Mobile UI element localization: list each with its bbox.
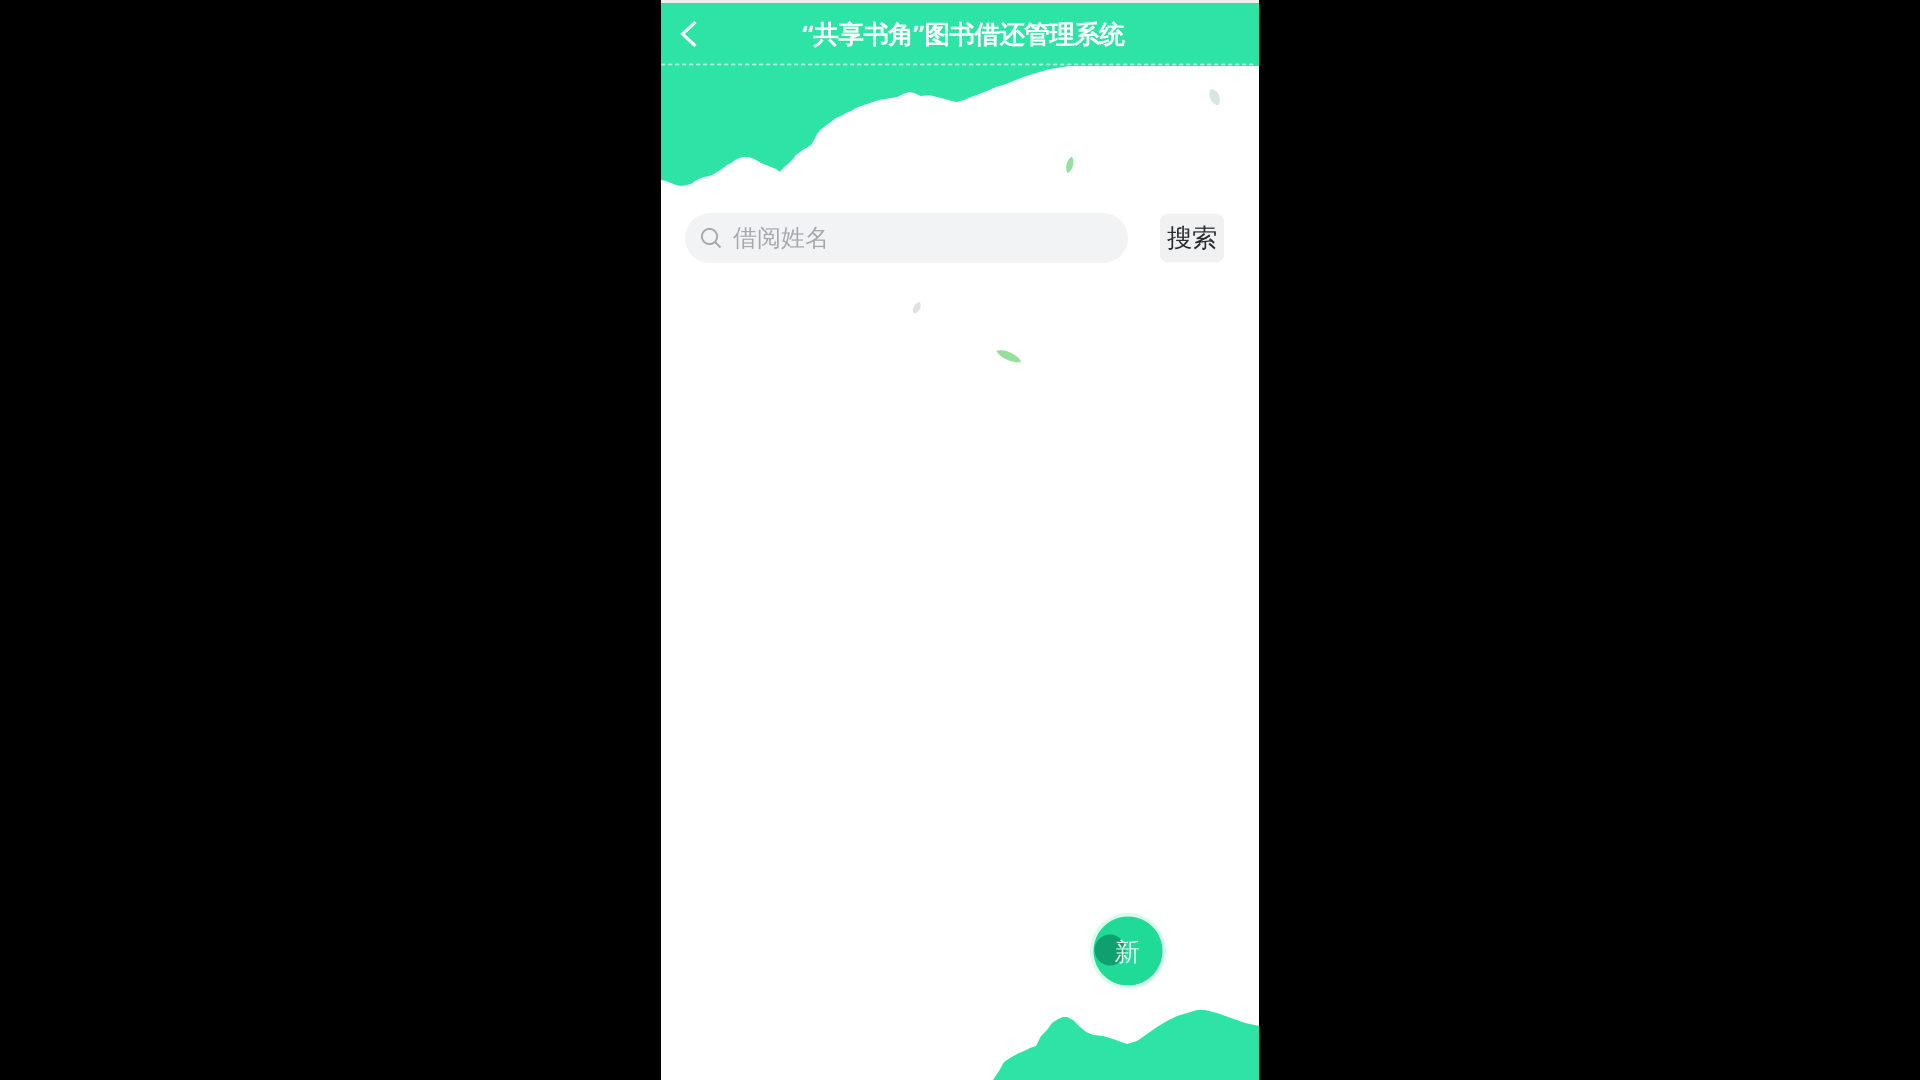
staticText: 新 <box>1114 936 1139 967</box>
button[interactable]: 返回 <box>663 5 715 63</box>
button[interactable]: 新增 <box>1089 912 1167 990</box>
staticText: 借阅姓名 <box>733 223 829 253</box>
staticText: 搜索 <box>1167 222 1217 253</box>
staticText: “共享书角”图书借还管理系统 <box>802 17 1124 51</box>
button[interactable]: 搜索 <box>1160 213 1224 262</box>
